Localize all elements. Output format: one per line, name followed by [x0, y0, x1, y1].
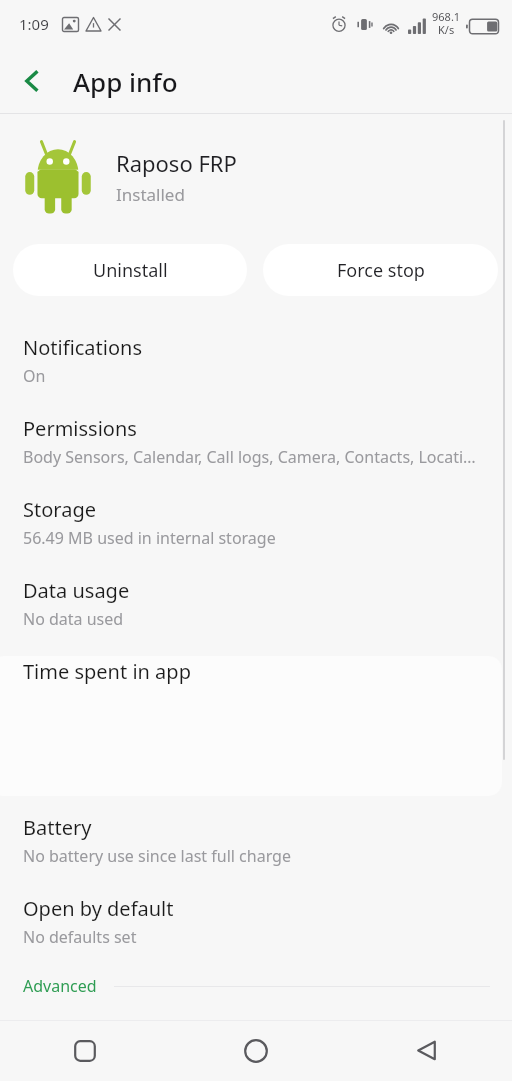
button[interactable]: Back: [341, 1020, 512, 1081]
button[interactable]: Force stop: [263, 244, 498, 296]
button[interactable]: Permissions: [0, 403, 512, 484]
staticText: Data usage: [23, 577, 130, 604]
staticText: No data used: [23, 608, 124, 630]
staticText: On: [23, 365, 46, 387]
staticText: Raposo FRP: [116, 148, 237, 178]
button[interactable]: Home: [170, 1020, 341, 1081]
button[interactable]: Recent apps: [0, 1020, 170, 1081]
button[interactable]: Uninstall: [13, 244, 247, 296]
staticText: No defaults set: [23, 926, 137, 948]
button[interactable]: Back: [8, 57, 56, 105]
staticText: Body Sensors, Calendar, Call logs, Camer…: [23, 446, 476, 468]
button[interactable]: Notifications: [0, 322, 512, 403]
button[interactable]: Data usage: [0, 565, 512, 646]
staticText: Permissions: [23, 415, 137, 442]
button[interactable]: Advanced: [0, 964, 512, 1008]
staticText: Uninstall: [93, 258, 168, 283]
staticText: Force stop: [337, 258, 425, 283]
staticText: Open by default: [23, 895, 174, 922]
staticText: Notifications: [23, 334, 142, 361]
staticText: Battery: [23, 814, 92, 841]
staticText: Time spent in app: [23, 658, 191, 685]
staticText: K/s: [438, 22, 455, 37]
staticText: Advanced: [23, 975, 97, 997]
staticText: 968.1: [432, 9, 461, 24]
staticText: No battery use since last full charge: [23, 845, 291, 867]
button[interactable]: Time spent in app: [0, 656, 512, 699]
staticText: Installed: [116, 183, 185, 206]
staticText: 56.49 MB used in internal storage: [23, 527, 276, 549]
staticText: 1:09: [19, 14, 49, 34]
button[interactable]: Open by default: [0, 883, 512, 964]
staticText: Storage: [23, 496, 96, 523]
staticText: App info: [73, 64, 178, 99]
button[interactable]: Battery: [0, 802, 512, 883]
button[interactable]: Storage: [0, 484, 512, 565]
